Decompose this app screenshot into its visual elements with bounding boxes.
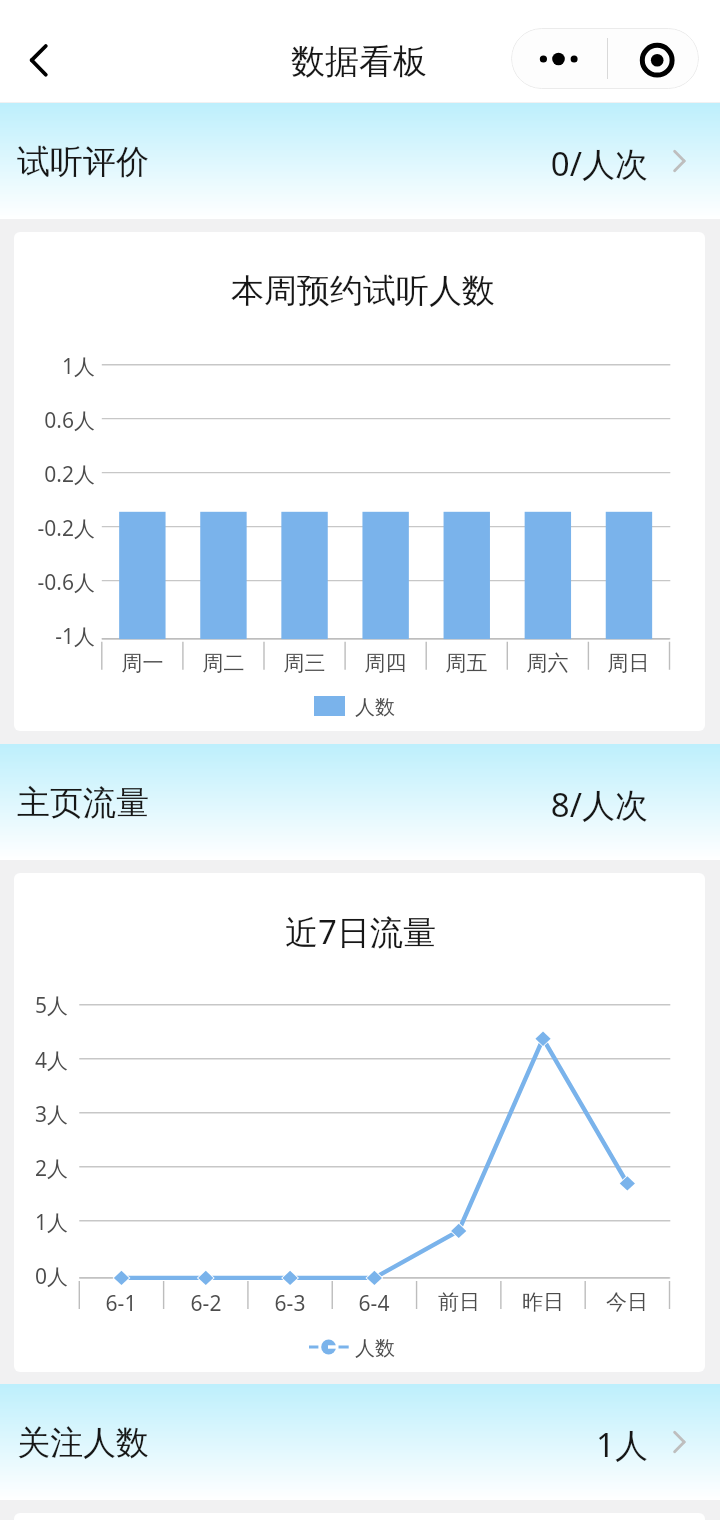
staticText: 0人 [14,1262,68,1291]
staticText: 周三 [264,650,345,676]
staticText: 1人 [0,1422,648,1467]
staticText: 3人 [14,1100,68,1129]
staticText: 主页流量 [17,782,149,824]
staticText: 人数 [355,1336,395,1358]
staticText: 人数 [355,695,395,717]
staticText: 本周预约试听人数 [231,270,495,312]
staticText: 周一 [102,650,183,676]
staticText: 周五 [426,650,507,676]
staticText: 试听评价 [17,141,149,183]
button[interactable]: 主页流量 [0,744,720,860]
staticText: 数据看板 [291,40,427,83]
staticText: 前日 [417,1289,501,1315]
staticText: -0.2人 [14,514,95,543]
button[interactable]: 关注人数 [0,1384,720,1500]
staticText: 周四 [345,650,426,676]
staticText: 0.6人 [14,406,95,435]
staticText: 周二 [183,650,264,676]
staticText: 近7日流量 [285,909,436,954]
button[interactable]: 试听评价 [0,103,720,219]
staticText: 6-3 [248,1289,332,1318]
staticText: 6-2 [164,1289,248,1318]
staticText: 周六 [507,650,588,676]
button[interactable]: More options [511,28,607,89]
staticText: 0/人次 [0,141,648,186]
staticText: -1人 [14,622,95,651]
button[interactable]: Back [6,25,72,93]
staticText: 5人 [14,991,68,1020]
staticText: 今日 [585,1289,669,1315]
staticText: -0.6人 [14,568,95,597]
button[interactable]: Close mini program [608,28,699,89]
staticText: 周日 [588,650,669,676]
staticText: 昨日 [501,1289,585,1315]
staticText: 6-4 [332,1289,416,1318]
staticText: 2人 [14,1154,68,1183]
staticText: 6-1 [79,1289,163,1318]
staticText: 4人 [14,1046,68,1075]
staticText: 1人 [14,352,95,381]
staticText: 8/人次 [0,782,648,827]
staticText: 1人 [14,1208,68,1237]
staticText: 0.2人 [14,460,95,489]
staticText: 关注人数 [17,1422,149,1464]
